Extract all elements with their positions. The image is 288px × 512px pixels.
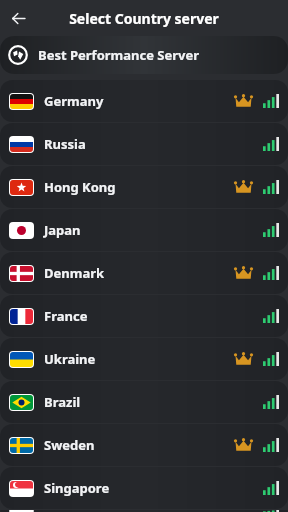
button[interactable]: Best Performance Server [0,36,288,74]
button[interactable]: Russia [0,123,288,165]
button[interactable]: Brazil [0,381,288,423]
button[interactable]: Germany [0,80,288,122]
staticText: Best Performance Server [38,46,200,64]
button[interactable]: Japan [0,510,288,512]
staticText: Denmark [44,264,105,282]
staticText: Russia [44,135,86,153]
staticText: Singapore [44,479,110,497]
staticText: Germany [44,92,104,110]
button[interactable]: Back [0,0,36,36]
staticText: Brazil [44,393,81,411]
staticText: Ukraine [44,350,96,368]
button[interactable]: Denmark [0,252,288,294]
button[interactable]: Singapore [0,467,288,509]
staticText: Hong Kong [44,178,116,196]
button[interactable]: Ukraine [0,338,288,380]
button[interactable]: Hong Kong [0,166,288,208]
staticText: Select Country server [69,9,219,28]
staticText: France [44,307,88,325]
staticText: Japan [44,221,81,239]
button[interactable]: Sweden [0,424,288,466]
staticText: Sweden [44,436,95,454]
button[interactable]: France [0,295,288,337]
button[interactable]: Japan [0,209,288,251]
